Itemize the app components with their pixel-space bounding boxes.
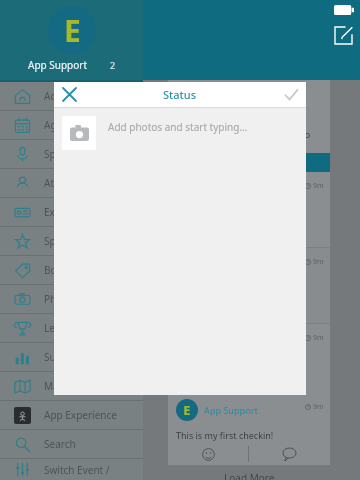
button[interactable]: Load More xyxy=(168,465,330,480)
staticText: Speakers xyxy=(44,147,87,161)
staticText: Leaderboard xyxy=(44,321,105,335)
button[interactable]: Speakers xyxy=(0,140,143,168)
staticText: E xyxy=(183,401,191,419)
staticText: Exhibitors xyxy=(44,205,91,219)
staticText: Welcome to the app for this year's Event… xyxy=(178,103,322,154)
staticText: 2 xyxy=(110,59,116,71)
staticText: Load More xyxy=(224,471,275,480)
staticText: Promoted Post xyxy=(178,87,231,97)
button[interactable]: Exhibitors xyxy=(0,198,143,226)
button[interactable]: Compose post xyxy=(330,22,356,48)
staticText: 9m xyxy=(313,333,324,343)
button[interactable]: Activity xyxy=(0,82,143,110)
staticText: Attendees xyxy=(44,176,92,190)
button[interactable]: Leaderboard xyxy=(0,314,143,342)
button[interactable]: Surveys xyxy=(0,343,143,371)
staticText: E xyxy=(64,10,81,51)
staticText: App Support xyxy=(28,58,88,72)
button[interactable]: Bookmarks xyxy=(0,256,143,284)
staticText: Agenda xyxy=(44,118,81,132)
staticText: Bookmarks xyxy=(44,263,98,277)
button[interactable]: Search xyxy=(0,430,143,458)
button[interactable]: Add photo xyxy=(62,116,96,150)
button[interactable]: Comment xyxy=(249,443,330,465)
staticText: 9m xyxy=(313,181,324,191)
button[interactable]: Like xyxy=(168,443,248,465)
button[interactable]: Map xyxy=(0,372,143,400)
button[interactable]: Close xyxy=(54,82,84,107)
staticText: Activity xyxy=(44,89,78,103)
staticText: Add photos and start typing... xyxy=(108,120,248,134)
button[interactable]: Photos xyxy=(0,285,143,313)
button[interactable]: Switch Event / Logout xyxy=(0,459,143,480)
staticText: 9m xyxy=(313,257,324,267)
staticText: Map xyxy=(44,379,65,393)
button[interactable]: Submit xyxy=(276,82,306,107)
staticText: This is my first checkin! xyxy=(176,429,274,441)
button[interactable]: App Experience xyxy=(0,401,143,429)
staticText: 9m xyxy=(313,402,324,412)
staticText: Sponsors xyxy=(44,234,88,248)
staticText: Surveys xyxy=(44,350,81,364)
button[interactable]: Agenda xyxy=(0,111,143,139)
staticText: Status xyxy=(163,87,197,102)
button[interactable]: Sponsors xyxy=(0,227,143,255)
staticText: Search xyxy=(44,437,76,451)
staticText: App Experience xyxy=(44,408,117,422)
button[interactable]: Attendees xyxy=(0,169,143,197)
staticText: App Support xyxy=(204,404,258,416)
staticText: Switch Event / Logout xyxy=(44,463,143,477)
staticText: Photos xyxy=(44,292,77,306)
